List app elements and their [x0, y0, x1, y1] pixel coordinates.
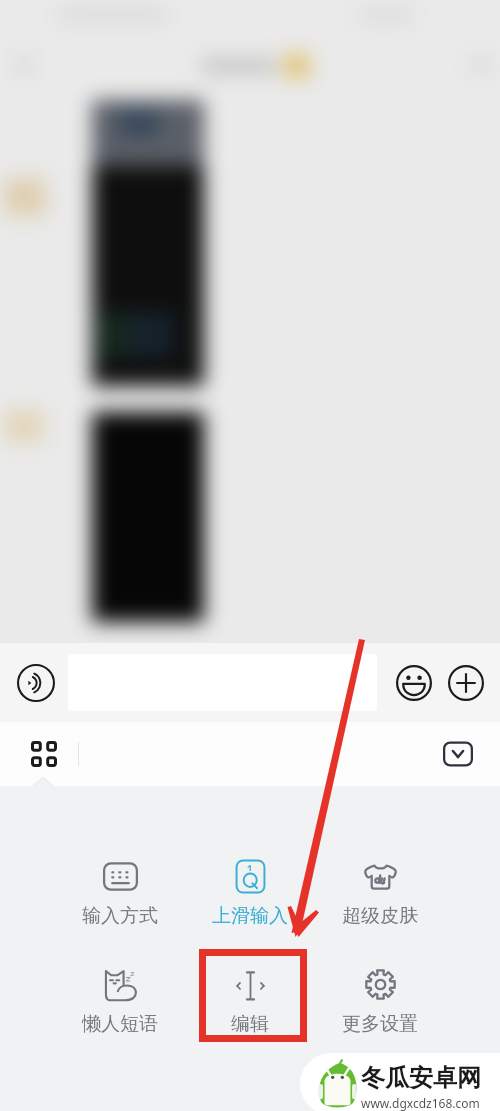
- button[interactable]: Hide keyboard: [438, 734, 478, 774]
- staticText: 更多设置: [342, 1012, 418, 1036]
- button[interactable]: Keyboard tools: [24, 734, 64, 774]
- button[interactable]: 输入方式: [55, 842, 185, 950]
- staticText: 输入方式: [82, 904, 158, 928]
- button[interactable]: 超级皮肤: [315, 842, 445, 950]
- staticText: 超级皮肤: [342, 904, 418, 928]
- button[interactable]: Voice input: [13, 660, 59, 706]
- staticText: 上滑输入: [212, 904, 288, 928]
- button[interactable]: Emoji: [392, 661, 436, 705]
- staticText: 懒人短语: [82, 1012, 158, 1036]
- button[interactable]: 上滑输入: [185, 842, 315, 950]
- staticText: 编辑: [231, 1012, 269, 1036]
- button[interactable]: 编辑: [185, 950, 315, 1058]
- button[interactable]: 更多设置: [315, 950, 445, 1058]
- button[interactable]: [68, 654, 377, 711]
- staticText: www.dgxcdz168.com: [361, 1095, 480, 1111]
- button[interactable]: 懒人短语: [55, 950, 185, 1058]
- button[interactable]: Add: [444, 661, 488, 705]
- staticText: 冬瓜安卓网: [361, 1063, 481, 1093]
